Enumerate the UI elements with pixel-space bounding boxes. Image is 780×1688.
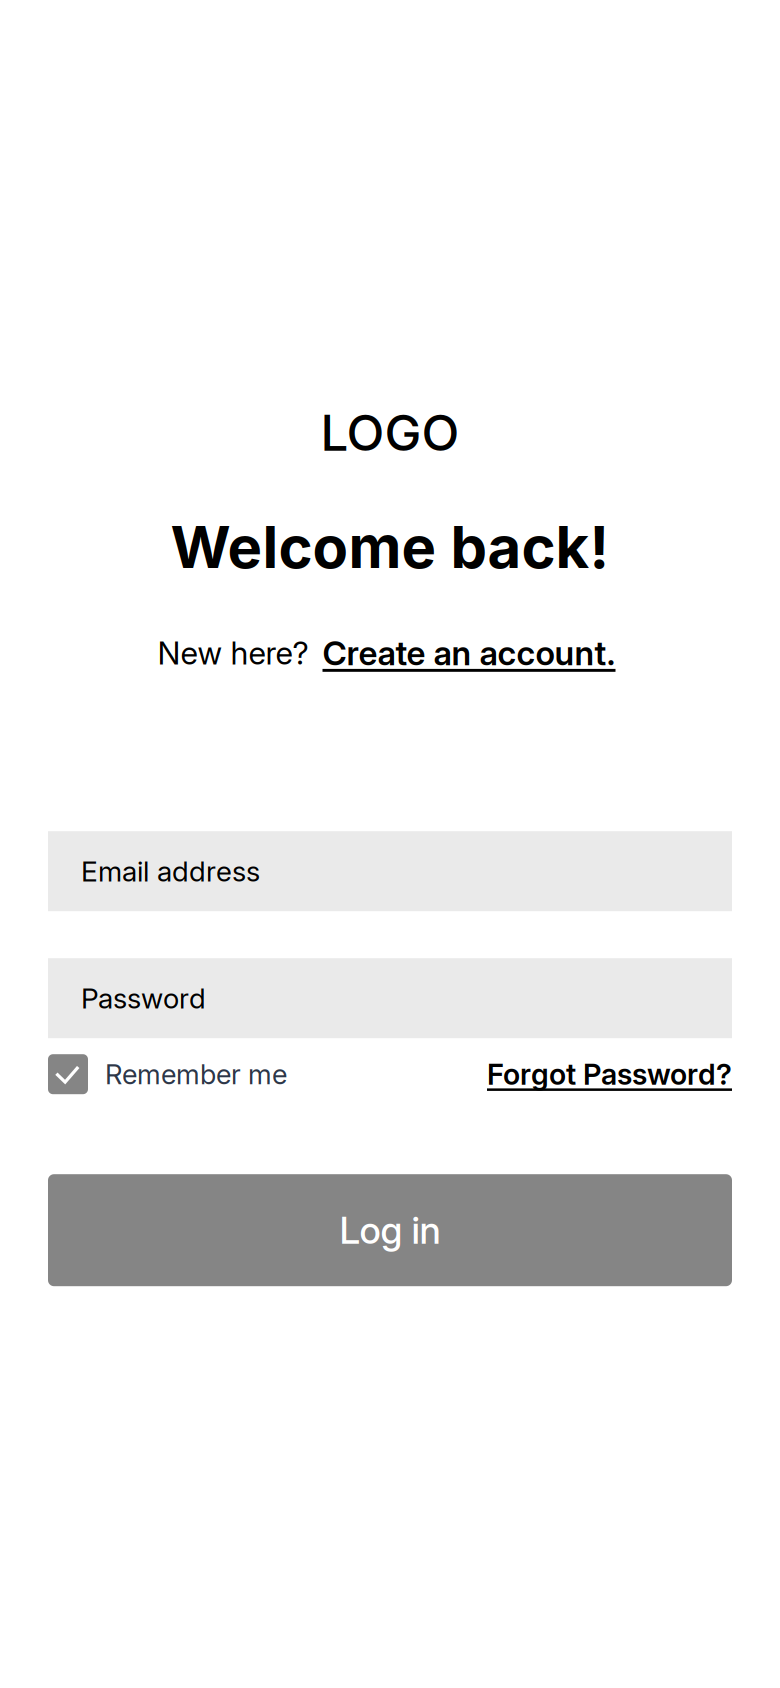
button[interactable]: Remember me	[48, 1054, 287, 1094]
staticText: New here?	[157, 634, 308, 672]
staticText: Email address	[81, 854, 260, 888]
staticText: LOGO	[320, 403, 459, 463]
staticText: Welcome back!	[170, 512, 609, 582]
button[interactable]: Log in	[48, 1174, 732, 1286]
button[interactable]: Password	[48, 958, 732, 1038]
staticText: Forgot Password?	[487, 1057, 732, 1092]
button[interactable]: Email address	[48, 831, 732, 911]
staticText: Log in	[339, 1208, 440, 1253]
staticText: Create an account.	[322, 633, 615, 673]
button[interactable]: Create an account.	[308, 633, 615, 673]
staticText: Remember me	[105, 1058, 287, 1091]
staticText: Password	[81, 981, 206, 1015]
button[interactable]: Forgot Password?	[487, 1057, 732, 1092]
